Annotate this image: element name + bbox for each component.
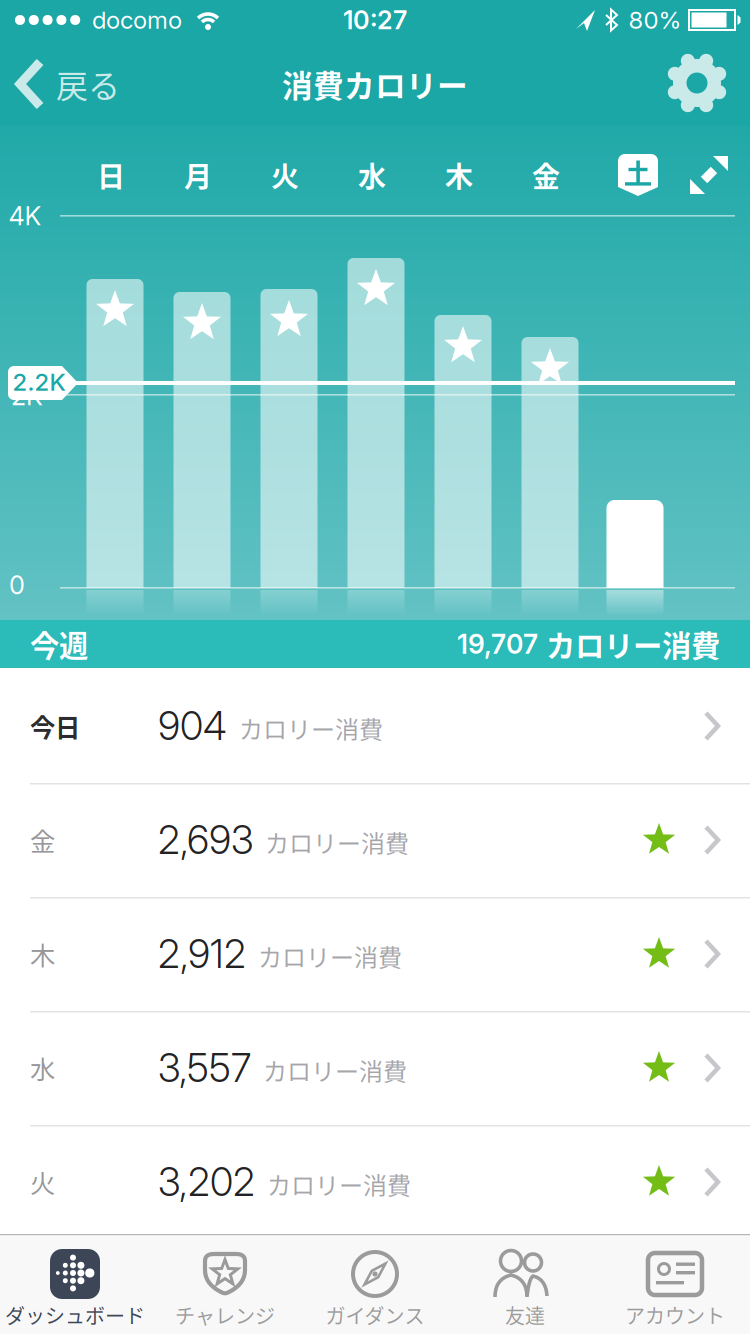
- staticText: 2,912: [158, 931, 246, 977]
- button[interactable]: Settings: [662, 48, 732, 118]
- staticText: 3,202: [158, 1159, 255, 1205]
- staticText: カロリー消費: [265, 825, 409, 859]
- staticText: 19,707: [457, 628, 538, 660]
- button[interactable]: 土曜日: [618, 154, 658, 196]
- staticText: 10:27: [343, 5, 407, 35]
- staticText: 今日: [30, 708, 80, 744]
- button[interactable]: ダッシュボード: [0, 1234, 159, 1334]
- staticText: 木: [30, 936, 55, 972]
- staticText: カロリー消費: [546, 623, 720, 665]
- staticText: カロリー消費: [258, 939, 402, 973]
- staticText: 友達: [505, 1300, 545, 1329]
- staticText: 水: [358, 155, 386, 195]
- button[interactable]: チャレンジ: [141, 1234, 309, 1334]
- button[interactable]: 火: [0, 1125, 750, 1239]
- staticText: アカウント: [625, 1300, 725, 1329]
- staticText: 金: [30, 822, 55, 858]
- staticText: docomo: [92, 5, 182, 34]
- staticText: 2,693: [158, 817, 253, 863]
- staticText: 4K: [8, 201, 41, 231]
- staticText: 火: [271, 155, 299, 195]
- staticText: カロリー消費: [263, 1053, 407, 1087]
- staticText: 0: [9, 570, 25, 600]
- button[interactable]: 水: [0, 1011, 750, 1125]
- button[interactable]: アカウント: [591, 1234, 750, 1334]
- button[interactable]: 金: [0, 783, 750, 897]
- staticText: 2K: [11, 381, 43, 411]
- staticText: 904: [158, 703, 227, 749]
- staticText: 3,557: [158, 1045, 251, 1091]
- staticText: 火: [30, 1164, 55, 1200]
- staticText: 2.2K: [12, 367, 65, 396]
- staticText: 日: [97, 155, 125, 195]
- button[interactable]: Expand chart: [687, 153, 731, 197]
- staticText: 水: [30, 1050, 55, 1086]
- staticText: カロリー消費: [239, 711, 383, 745]
- staticText: カロリー消費: [267, 1167, 411, 1201]
- button[interactable]: ガイダンス: [291, 1234, 459, 1334]
- staticText: 月: [184, 155, 212, 195]
- button[interactable]: 戻る: [16, 54, 196, 114]
- staticText: ガイダンス: [325, 1300, 424, 1329]
- button[interactable]: 今日: [0, 669, 750, 783]
- button[interactable]: 友達: [441, 1234, 609, 1334]
- staticText: 戻る: [56, 61, 120, 107]
- staticText: ダッシュボード: [5, 1300, 145, 1329]
- staticText: 80%: [628, 5, 681, 34]
- button[interactable]: 木: [0, 897, 750, 1011]
- staticText: 金: [532, 155, 560, 195]
- staticText: 木: [445, 155, 473, 195]
- staticText: チャレンジ: [175, 1300, 275, 1329]
- staticText: 今週: [30, 623, 88, 665]
- staticText: 消費カロリー: [282, 62, 468, 106]
